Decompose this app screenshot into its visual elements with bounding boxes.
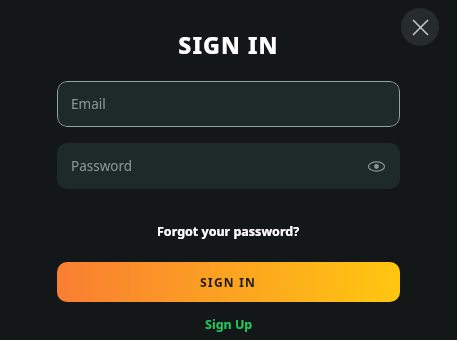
staticText: Password — [71, 157, 133, 175]
button[interactable]: Sign Up — [197, 313, 261, 336]
button[interactable]: Close — [401, 8, 439, 46]
button[interactable]: Password — [57, 143, 400, 189]
staticText: Email — [71, 95, 106, 113]
staticText: Sign Up — [205, 316, 253, 333]
button[interactable]: Email — [57, 81, 400, 127]
staticText: Forgot your password? — [157, 223, 300, 240]
button[interactable]: Show password — [364, 154, 388, 178]
staticText: SIGN IN — [200, 274, 257, 290]
button[interactable]: SIGN IN — [57, 262, 400, 302]
button[interactable]: Forgot your password? — [151, 220, 306, 243]
staticText: SIGN IN — [178, 29, 279, 60]
